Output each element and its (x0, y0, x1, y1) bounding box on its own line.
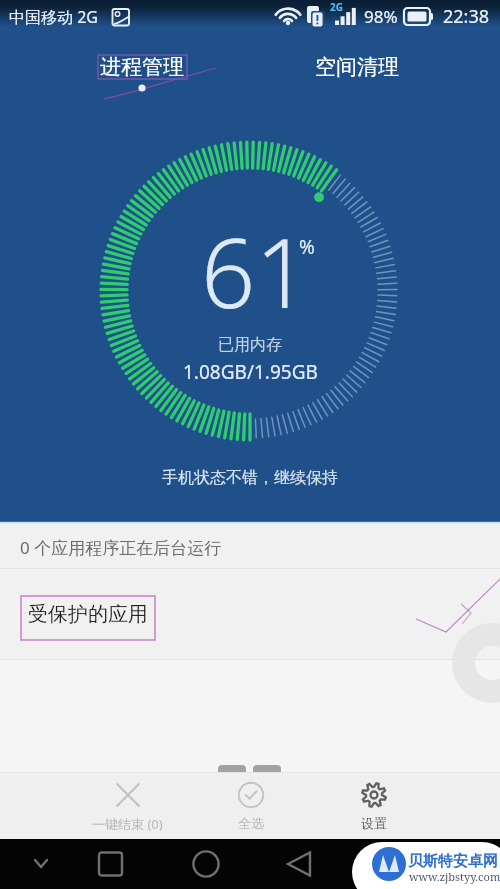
button[interactable]: Select all (189, 772, 312, 839)
staticText: 设置 (361, 815, 387, 831)
staticText: 中国移动 2G (9, 6, 98, 28)
staticText: 空间清理 (315, 54, 399, 80)
button[interactable]: 受保护的应用 (0, 569, 500, 659)
staticText: 61 (201, 206, 310, 335)
button[interactable]: Settings (312, 772, 435, 839)
staticText: 贝斯特安卓网 (408, 852, 498, 871)
button[interactable]: End all (66, 772, 189, 839)
button[interactable]: 空间清理 (312, 52, 402, 82)
staticText: % (299, 234, 315, 260)
staticText: 2G (330, 0, 343, 14)
button[interactable]: 进程管理 (97, 52, 187, 82)
staticText: 手机状态不错，继续保持 (162, 468, 338, 488)
staticText: 受保护的应用 (28, 602, 148, 627)
staticText: 22:38 (443, 4, 490, 29)
button[interactable]: 0 个应用程序正在后台运行 (0, 526, 500, 568)
staticText: 0 个应用程序正在后台运行 (20, 536, 222, 559)
staticText: www.zjbstyy.com (409, 869, 500, 884)
staticText: 已用内存 (218, 335, 282, 355)
staticText: 一键结束 (0) (92, 815, 163, 833)
staticText: 全选 (238, 815, 264, 831)
staticText: 进程管理 (100, 54, 184, 80)
staticText: 98% (364, 5, 398, 28)
staticText: 1.08GB/1.95GB (183, 359, 318, 385)
